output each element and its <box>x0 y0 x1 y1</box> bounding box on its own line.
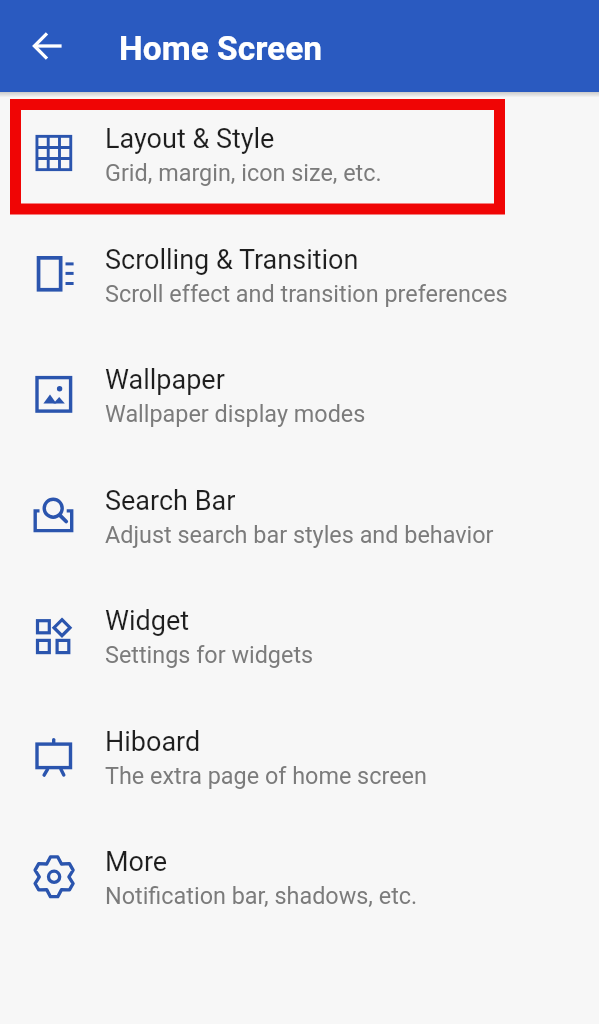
staticText: Hiboard <box>105 726 201 758</box>
button[interactable]: Back <box>22 20 74 72</box>
button[interactable]: Wallpaper <box>0 333 599 454</box>
button[interactable]: Layout & Style <box>0 92 599 213</box>
staticText: Home Screen <box>119 29 323 68</box>
button[interactable]: Search Bar <box>0 454 599 575</box>
staticText: More <box>105 846 168 878</box>
staticText: Grid, margin, icon size, etc. <box>105 159 382 186</box>
staticText: The extra page of home screen <box>105 762 427 789</box>
staticText: Scroll effect and transition preferences <box>105 280 508 307</box>
staticText: Settings for widgets <box>105 641 314 668</box>
staticText: Notification bar, shadows, etc. <box>105 882 418 909</box>
button[interactable]: Hiboard <box>0 695 599 816</box>
button[interactable]: Widget <box>0 574 599 695</box>
button[interactable]: More <box>0 815 599 936</box>
staticText: Search Bar <box>105 485 236 517</box>
staticText: Wallpaper display modes <box>105 400 366 427</box>
button[interactable]: Scrolling & Transition <box>0 213 599 334</box>
staticText: Layout & Style <box>105 123 275 155</box>
staticText: Widget <box>105 605 190 637</box>
staticText: Adjust search bar styles and behavior <box>105 521 494 548</box>
staticText: Scrolling & Transition <box>105 244 359 276</box>
staticText: Wallpaper <box>105 364 225 396</box>
